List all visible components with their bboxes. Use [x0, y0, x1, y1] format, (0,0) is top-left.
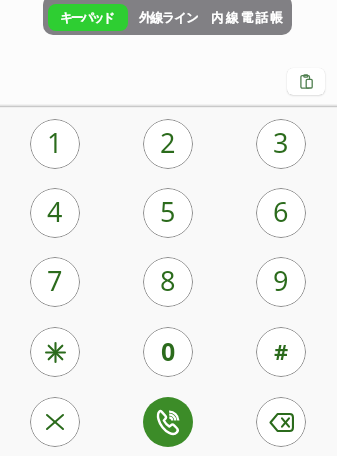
button[interactable]: Backspace — [256, 397, 306, 447]
staticText: 3 — [273, 124, 289, 161]
button[interactable]: Clear — [30, 397, 80, 447]
button[interactable]: 7 — [30, 257, 80, 307]
button[interactable]: Call — [143, 397, 193, 447]
staticText: 5 — [160, 193, 176, 230]
button[interactable]: 3 — [256, 119, 306, 169]
button[interactable]: 0 — [143, 327, 193, 377]
staticText: 内線電話帳 — [211, 10, 286, 26]
button[interactable]: Pound — [256, 327, 306, 377]
button[interactable]: 4 — [30, 188, 80, 238]
staticText: 4 — [47, 193, 63, 230]
staticText: # — [274, 336, 289, 366]
button[interactable]: 2 — [143, 119, 193, 169]
staticText: 0 — [161, 334, 176, 368]
staticText: 2 — [160, 124, 176, 161]
button[interactable]: 1 — [30, 119, 80, 169]
staticText: 6 — [273, 193, 289, 230]
staticText: キーパッド — [60, 10, 114, 26]
staticText: 外線ライン — [139, 10, 198, 26]
button[interactable]: 9 — [256, 257, 306, 307]
button[interactable]: キーパッド — [48, 4, 128, 31]
button[interactable]: 6 — [256, 188, 306, 238]
button[interactable]: Paste — [287, 68, 325, 95]
button[interactable]: 5 — [143, 188, 193, 238]
staticText: 1 — [47, 124, 63, 161]
button[interactable]: 外線ライン — [132, 4, 205, 31]
button[interactable]: Star — [30, 327, 80, 377]
staticText: 7 — [47, 262, 63, 299]
staticText: 9 — [273, 262, 289, 299]
button[interactable]: 内線電話帳 — [203, 4, 291, 31]
staticText: 8 — [160, 262, 176, 299]
button[interactable]: 8 — [143, 257, 193, 307]
